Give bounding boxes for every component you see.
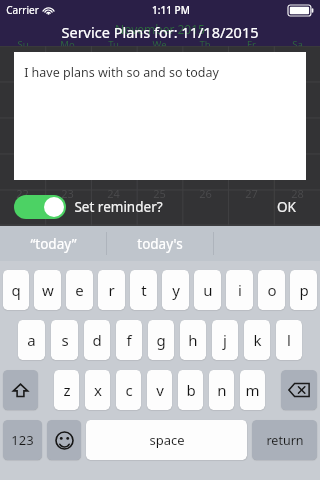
staticText: m	[245, 380, 260, 400]
staticText: b	[186, 380, 196, 400]
staticText: t	[141, 280, 147, 300]
button[interactable]: u	[194, 270, 221, 310]
staticText: z	[63, 380, 71, 400]
button[interactable]: v	[147, 370, 172, 410]
staticText: h	[188, 330, 198, 350]
staticText: “today”	[30, 235, 77, 253]
button[interactable]: p	[290, 270, 317, 310]
button[interactable]: OK	[256, 193, 316, 221]
staticText: i	[238, 280, 242, 300]
button[interactable]: k	[244, 320, 270, 360]
staticText: v	[156, 380, 164, 400]
staticText: r	[108, 280, 115, 300]
button[interactable]: g	[148, 320, 174, 360]
staticText: n	[217, 380, 227, 400]
button[interactable]: Backspace	[281, 370, 317, 410]
button[interactable]: 123	[3, 420, 42, 460]
staticText: space	[149, 431, 185, 449]
staticText: l	[287, 330, 291, 350]
button[interactable]: c	[116, 370, 141, 410]
staticText: Tu	[108, 38, 119, 46]
staticText: 23	[61, 186, 74, 201]
button[interactable]: Emoji keyboard	[47, 420, 81, 460]
button[interactable]: Shift	[3, 370, 38, 410]
staticText: Set reminder?	[74, 198, 163, 216]
button[interactable]: n	[209, 370, 234, 410]
button[interactable]: d	[84, 320, 110, 360]
button[interactable]: r	[98, 270, 125, 310]
staticText: f	[126, 330, 132, 350]
button[interactable]: y	[162, 270, 189, 310]
staticText: Mo	[60, 38, 75, 46]
button[interactable]: b	[178, 370, 203, 410]
button[interactable]: h	[180, 320, 206, 360]
button[interactable]: x	[85, 370, 110, 410]
staticText: w	[42, 280, 54, 300]
staticText: c	[125, 380, 133, 400]
staticText: 28	[291, 186, 304, 201]
staticText: p	[299, 280, 309, 300]
button[interactable]: e	[66, 270, 93, 310]
staticText: d	[92, 330, 102, 350]
staticText: 22	[16, 186, 29, 201]
button[interactable]: s	[51, 320, 78, 360]
button[interactable]: i	[226, 270, 253, 310]
staticText: j	[223, 330, 227, 350]
staticText: o	[267, 280, 277, 300]
button[interactable]: I have plans with so and so today	[14, 52, 306, 180]
button[interactable]: a	[18, 320, 45, 360]
button[interactable]: f	[116, 320, 142, 360]
staticText: Su	[17, 38, 29, 46]
staticText: We	[152, 38, 167, 46]
staticText: Service Plans for: 11/18/2015	[61, 22, 259, 42]
button[interactable]: l	[276, 320, 302, 360]
button[interactable]: t	[130, 270, 157, 310]
staticText: 26	[199, 186, 212, 201]
staticText: today's	[137, 235, 183, 253]
staticText: Sa	[292, 38, 303, 46]
button[interactable]: space	[86, 420, 247, 460]
staticText: return	[266, 432, 304, 449]
staticText: 123	[11, 431, 34, 449]
staticText: Th	[199, 38, 211, 46]
staticText: I have plans with so and so today	[24, 64, 219, 81]
staticText: s	[61, 330, 69, 350]
staticText: Fr	[247, 38, 256, 46]
staticText: q	[11, 280, 21, 300]
staticText: 1:11 PM	[152, 3, 190, 17]
staticText: November 2015	[115, 21, 205, 37]
button[interactable]: q	[3, 270, 29, 310]
button[interactable]: m	[240, 370, 265, 410]
button[interactable]: return	[252, 420, 317, 460]
staticText: 27	[245, 186, 258, 201]
button[interactable]: Set reminder toggle, on	[14, 195, 66, 219]
staticText: a	[27, 330, 36, 350]
button[interactable]: “today”	[0, 226, 106, 261]
button[interactable]: w	[34, 270, 61, 310]
staticText: 25	[153, 186, 166, 201]
staticText: e	[75, 280, 84, 300]
staticText: y	[172, 280, 180, 300]
staticText: 24	[107, 186, 120, 201]
staticText: Carrier	[6, 3, 39, 17]
button[interactable]: j	[212, 320, 238, 360]
button[interactable]: z	[54, 370, 79, 410]
staticText: OK	[277, 198, 296, 216]
button[interactable]: o	[258, 270, 285, 310]
button[interactable]: today's	[107, 226, 213, 261]
staticText: g	[156, 330, 166, 350]
staticText: u	[203, 280, 213, 300]
staticText: x	[94, 380, 102, 400]
staticText: k	[253, 330, 262, 350]
